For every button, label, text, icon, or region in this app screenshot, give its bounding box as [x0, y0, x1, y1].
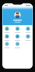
- button[interactable]: Rewards: [2, 41, 12, 49]
- button[interactable]: Savings: [23, 33, 33, 41]
- button[interactable]: Cards: [13, 33, 22, 41]
- button[interactable]: Profile: [14, 11, 21, 19]
- button[interactable]: Payments: [23, 26, 33, 34]
- button[interactable]: Transfer: [13, 26, 22, 34]
- button[interactable]: Top up: [2, 33, 12, 41]
- button[interactable]: More: [13, 41, 22, 49]
- button[interactable]: Accounts: [2, 26, 12, 34]
